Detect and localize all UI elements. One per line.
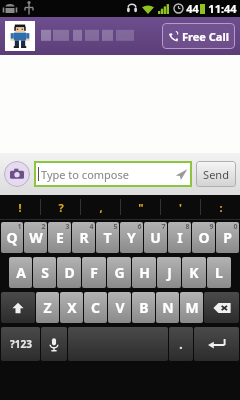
button[interactable]: "	[121, 195, 160, 219]
staticText: Send	[203, 167, 229, 182]
staticText: D	[64, 263, 75, 282]
staticText: 1	[17, 222, 22, 232]
button[interactable]: ,	[81, 195, 120, 219]
staticText: Type to compose	[41, 167, 129, 182]
staticText: C	[91, 298, 100, 317]
staticText: 8	[185, 222, 190, 232]
button[interactable]: R	[72, 222, 95, 253]
staticText: W	[29, 228, 43, 247]
button[interactable]: C	[84, 292, 107, 323]
button[interactable]: A	[9, 257, 32, 288]
button[interactable]: U	[144, 222, 167, 253]
button[interactable]: G	[107, 257, 131, 288]
button[interactable]: '	[161, 195, 200, 219]
staticText: X	[67, 298, 77, 317]
button[interactable]: Period	[169, 327, 193, 361]
button[interactable]: Free Call	[162, 23, 235, 49]
button[interactable]: W	[24, 222, 47, 253]
button[interactable]: Delete	[204, 292, 239, 323]
button[interactable]: O	[192, 222, 215, 253]
button[interactable]: Shift	[1, 292, 35, 323]
staticText: K	[189, 263, 199, 282]
button[interactable]: I	[168, 222, 191, 253]
button[interactable]: V	[108, 292, 131, 323]
staticText: V	[115, 298, 125, 317]
button[interactable]: :	[201, 195, 240, 219]
button[interactable]: M	[180, 292, 203, 323]
staticText: 4	[89, 222, 94, 232]
button[interactable]: E	[48, 222, 71, 253]
staticText: ,	[99, 200, 103, 215]
staticText: 9	[209, 222, 214, 232]
staticText: 5	[113, 222, 118, 232]
staticText: E	[56, 228, 64, 247]
button[interactable]: Q	[1, 222, 23, 253]
button[interactable]: N	[156, 292, 179, 323]
staticText: T	[103, 228, 112, 247]
staticText: 44	[186, 1, 199, 16]
staticText: Z	[43, 298, 52, 317]
button[interactable]: D	[57, 257, 81, 288]
staticText: !	[18, 200, 22, 215]
staticText: Q	[6, 228, 18, 247]
staticText: N	[162, 298, 174, 317]
staticText: G	[114, 263, 125, 282]
button[interactable]: Voice input	[41, 327, 67, 361]
button[interactable]: Symbols	[1, 327, 40, 361]
staticText: :	[219, 200, 223, 215]
button[interactable]: Attach photo	[4, 161, 30, 187]
staticText: Y	[127, 228, 136, 247]
staticText: 7	[161, 222, 166, 232]
staticText: O	[198, 228, 210, 247]
button[interactable]: K	[182, 257, 206, 288]
button[interactable]: Contact photo	[7, 23, 33, 49]
staticText: U	[150, 228, 161, 247]
button[interactable]: T	[96, 222, 119, 253]
staticText: S	[41, 263, 49, 282]
button[interactable]: Type to compose	[34, 161, 192, 187]
staticText: H	[139, 263, 150, 282]
button[interactable]: J	[157, 257, 181, 288]
button[interactable]: F	[82, 257, 106, 288]
staticText: M	[185, 298, 199, 317]
button[interactable]: Z	[36, 292, 59, 323]
button[interactable]: B	[132, 292, 155, 323]
staticText: 6	[137, 222, 142, 232]
staticText: 0	[233, 222, 238, 232]
staticText: A	[16, 263, 26, 282]
button[interactable]: !	[0, 195, 40, 219]
button[interactable]: S	[33, 257, 56, 288]
button[interactable]: H	[132, 257, 156, 288]
staticText: J	[167, 263, 172, 282]
button[interactable]: ?	[41, 195, 80, 219]
staticText: 2	[41, 222, 46, 232]
staticText: F	[90, 263, 98, 282]
staticText: ?	[58, 200, 64, 215]
staticText: I	[177, 228, 183, 247]
button[interactable]: L	[207, 257, 231, 288]
staticText: '	[179, 200, 182, 215]
button[interactable]: Enter	[194, 327, 239, 361]
button[interactable]: X	[60, 292, 83, 323]
staticText: .	[179, 336, 183, 352]
staticText: ?123	[10, 337, 32, 351]
staticText: 3	[65, 222, 70, 232]
staticText: P	[223, 228, 232, 247]
button[interactable]: P	[216, 222, 239, 253]
staticText: 11:44	[208, 1, 237, 16]
button[interactable]: Send	[196, 161, 236, 187]
button[interactable]: Y	[120, 222, 143, 253]
button[interactable]: Space	[68, 327, 168, 361]
staticText: Free Call	[182, 29, 229, 44]
staticText: L	[215, 263, 223, 282]
staticText: "	[138, 200, 144, 215]
staticText: B	[139, 298, 149, 317]
staticText: R	[79, 228, 89, 247]
